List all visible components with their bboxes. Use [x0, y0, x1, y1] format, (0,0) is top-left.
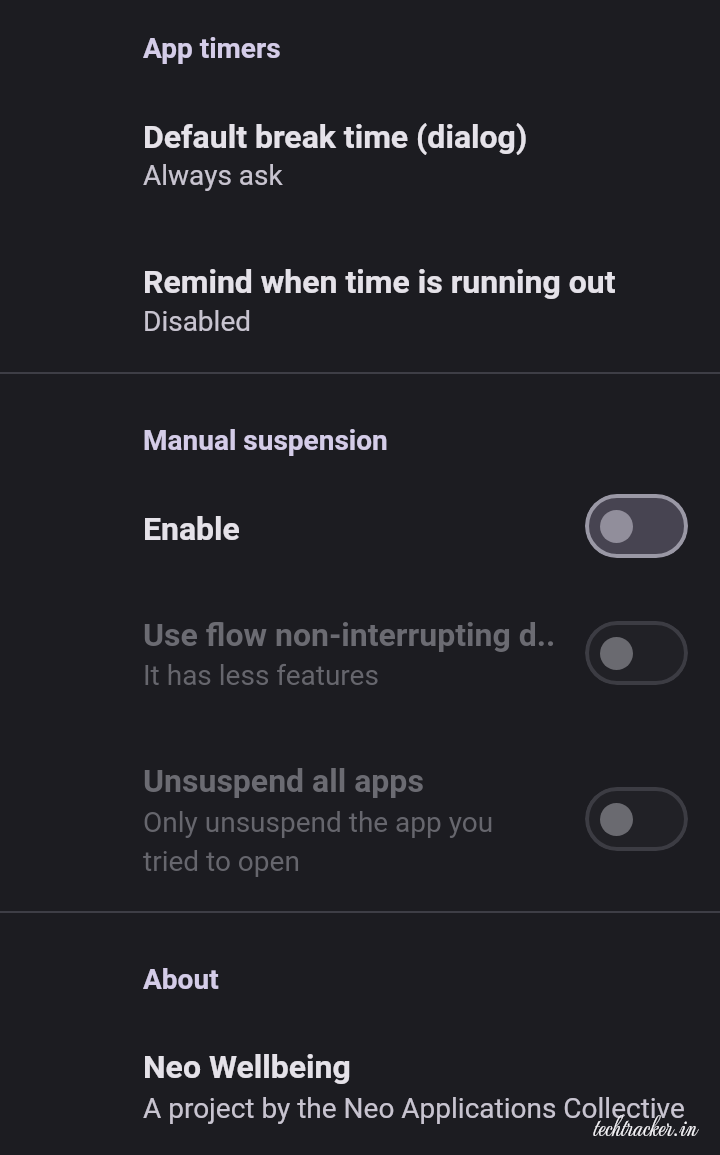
staticText: Manual suspension	[143, 424, 388, 457]
button[interactable]: Use flow non-interrupting d..	[0, 592, 720, 708]
staticText: Disabled	[143, 305, 720, 338]
staticText: Remind when time is running out	[143, 263, 703, 301]
button[interactable]: Default break time (dialog)	[0, 90, 720, 202]
staticText: techtracker.in	[593, 1106, 697, 1148]
staticText: About	[143, 963, 219, 996]
button[interactable]: Unsuspend all apps	[585, 787, 688, 851]
button[interactable]: Enable	[0, 488, 720, 568]
button[interactable]: Enable manual suspension	[585, 494, 688, 558]
button[interactable]: Use flow non-interrupting dialog	[585, 621, 688, 685]
staticText: Always ask	[143, 159, 720, 192]
staticText: Default break time (dialog)	[143, 118, 703, 156]
staticText: Enable	[143, 510, 703, 548]
button[interactable]: Neo Wellbeing	[0, 1021, 720, 1133]
staticText: Unsuspend all apps	[143, 762, 703, 800]
staticText: Only unsuspend the app you tried to open	[143, 806, 503, 878]
staticText: Neo Wellbeing	[143, 1048, 703, 1086]
button[interactable]: Remind when time is running out	[0, 236, 720, 348]
button[interactable]: Unsuspend all apps	[0, 738, 720, 888]
staticText: It has less features	[143, 659, 720, 692]
staticText: Use flow non-interrupting d..	[143, 616, 703, 654]
staticText: A project by the Neo Applications Collec…	[143, 1092, 720, 1125]
staticText: App timers	[143, 32, 281, 65]
